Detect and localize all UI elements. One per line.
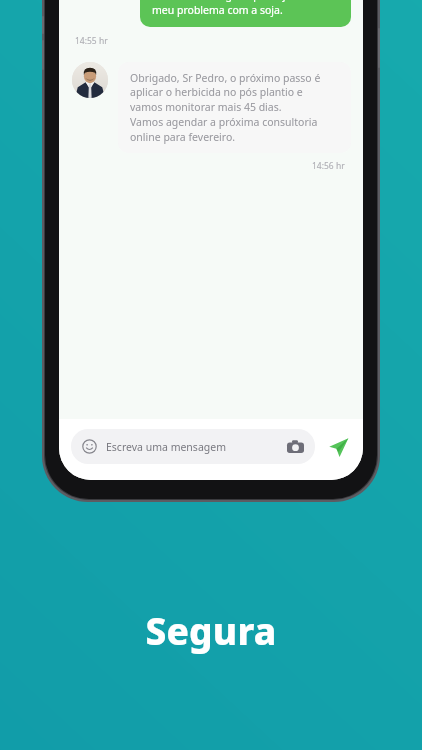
button[interactable]: Profile photo <box>72 62 108 98</box>
staticText: 14:56 hr <box>312 160 345 172</box>
staticText: Obrigado, Sr Pedro, o próximo passo é ap… <box>130 71 321 144</box>
staticText: Boa tarde, obrigado pela ajuda com o meu… <box>152 0 338 17</box>
other: Emoji <box>82 439 97 454</box>
button[interactable]: Send <box>325 434 351 460</box>
staticText: 14:55 hr <box>75 35 108 47</box>
button[interactable]: Emoji <box>71 429 315 464</box>
staticText: Segura <box>0 605 422 655</box>
button[interactable]: Obrigado, Sr Pedro, o próximo passo é ap… <box>118 62 351 153</box>
other: Camera <box>287 438 304 455</box>
staticText: Escreva uma mensagem <box>106 440 226 454</box>
button[interactable]: Boa tarde, obrigado pela ajuda com o meu… <box>140 0 351 27</box>
